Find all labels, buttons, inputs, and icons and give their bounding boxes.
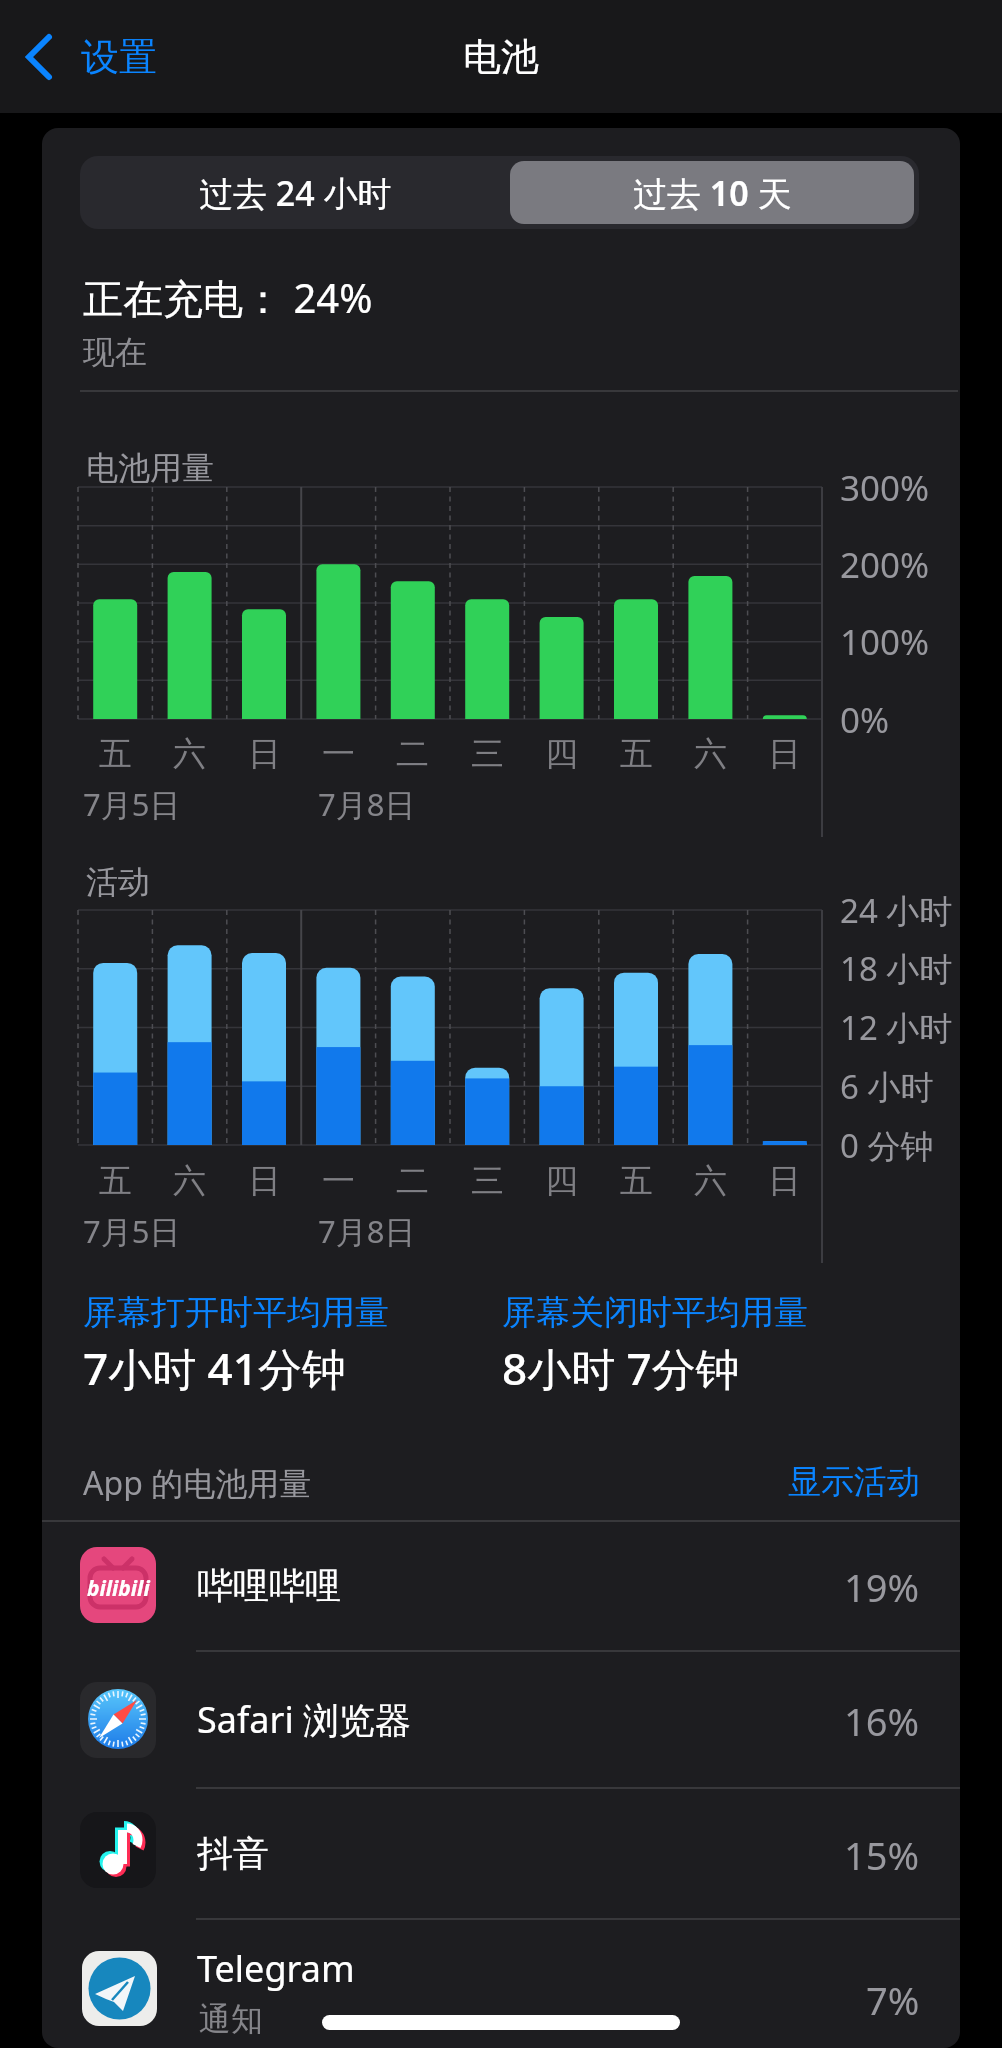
staticText: bilibili	[87, 1574, 150, 1603]
staticText: 四	[545, 1160, 578, 1202]
staticText: 五	[620, 733, 653, 775]
staticText: 过去 24 小时	[199, 170, 392, 216]
button[interactable]	[44, 1521, 958, 1650]
staticText: 18 小时	[840, 946, 953, 991]
staticText: 0%	[840, 696, 890, 742]
button[interactable]: 显示活动	[700, 1461, 920, 1501]
staticText: 三	[471, 733, 504, 775]
staticText: 8小时 7分钟	[502, 1338, 740, 1392]
staticText: 6 小时	[840, 1064, 934, 1109]
staticText: 300%	[840, 464, 930, 510]
staticText: 7%	[866, 1974, 920, 2022]
staticText: 7月8日	[318, 783, 416, 821]
staticText: 0 分钟	[840, 1123, 934, 1168]
staticText: 19%	[844, 1561, 920, 1609]
staticText: 一	[322, 733, 355, 775]
staticText: 六	[173, 1160, 206, 1202]
button[interactable]	[44, 1789, 958, 1918]
staticText: 7月5日	[83, 1210, 181, 1248]
staticText: 活动	[86, 862, 150, 900]
staticText: 现在	[83, 332, 147, 372]
staticText: 日	[248, 733, 281, 775]
button[interactable]: 设置	[24, 33, 157, 81]
staticText: 二	[396, 733, 429, 775]
staticText: 五	[99, 1160, 132, 1202]
staticText: 显示活动	[788, 1461, 920, 1501]
staticText: 设置	[81, 33, 157, 81]
staticText: 三	[471, 1160, 504, 1202]
staticText: 日	[768, 1160, 801, 1202]
staticText: 哔哩哔哩	[197, 1563, 341, 1608]
staticText: 15%	[844, 1829, 920, 1877]
staticText: 五	[99, 733, 132, 775]
staticText: 抖音	[197, 1831, 269, 1876]
staticText: 一	[322, 1160, 355, 1202]
staticText: 二	[396, 1160, 429, 1202]
staticText: 日	[768, 733, 801, 775]
staticText: 100%	[840, 618, 930, 664]
button[interactable]	[44, 1920, 958, 2046]
staticText: 六	[694, 733, 727, 775]
staticText: 200%	[840, 541, 930, 587]
staticText: 屏幕打开时平均用量	[83, 1291, 389, 1331]
staticText: 24 小时	[840, 888, 953, 933]
staticText: 电池	[463, 33, 539, 81]
button[interactable]: 过去 24 小时	[80, 156, 510, 229]
staticText: 7小时 41分钟	[83, 1338, 346, 1392]
staticText: 四	[545, 733, 578, 775]
staticText: 7月5日	[83, 783, 181, 821]
staticText: 通知	[199, 1999, 263, 2039]
staticText: 六	[694, 1160, 727, 1202]
staticText: 屏幕关闭时平均用量	[502, 1291, 808, 1331]
button[interactable]	[44, 1652, 958, 1787]
staticText: 12 小时	[840, 1005, 953, 1050]
staticText: 六	[173, 733, 206, 775]
staticText: 日	[248, 1160, 281, 1202]
staticText: 五	[620, 1160, 653, 1202]
staticText: 正在充电： 24%	[83, 270, 373, 320]
staticText: App 的电池用量	[83, 1461, 312, 1501]
staticText: 过去 10 天	[633, 170, 792, 216]
button[interactable]: 过去 10 天	[510, 161, 914, 224]
staticText: 16%	[844, 1695, 920, 1743]
staticText: 7月8日	[318, 1210, 416, 1248]
staticText: Telegram	[197, 1944, 355, 1992]
staticText: 电池用量	[86, 448, 214, 486]
staticText: Safari 浏览器	[197, 1695, 412, 1743]
